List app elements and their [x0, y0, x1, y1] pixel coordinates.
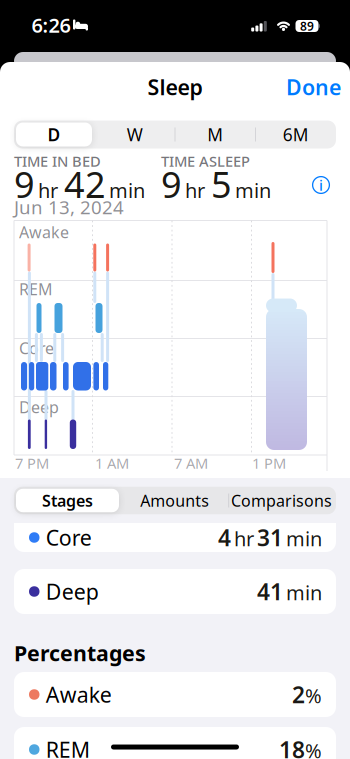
staticText: Percentages [14, 639, 146, 667]
staticText: Done [286, 73, 341, 101]
staticText: 6M [283, 123, 309, 146]
button[interactable]: About Sleep [311, 175, 330, 194]
staticText: TIME IN BED [14, 151, 101, 171]
staticText: 41 min [257, 576, 322, 606]
staticText: 18% [279, 734, 322, 759]
staticText: Awake [19, 221, 69, 243]
staticText: i [319, 175, 323, 195]
staticText: Awake [46, 680, 112, 709]
staticText: M [207, 123, 223, 146]
button[interactable]: Core [14, 523, 336, 552]
staticText: 4 hr 31 min [218, 522, 322, 552]
staticText: Amounts [140, 490, 209, 511]
staticText: Core [19, 337, 54, 359]
button[interactable]: M [180, 121, 250, 147]
staticText: TIME ASLEEP [161, 151, 250, 171]
staticText: Stages [42, 490, 93, 511]
staticText: 1 PM [252, 453, 286, 473]
staticText: Core [46, 523, 92, 552]
button[interactable]: D [16, 122, 92, 146]
staticText: Jun 13, 2024 [14, 195, 124, 219]
button[interactable]: Stages [16, 489, 119, 512]
staticText: D [47, 123, 60, 146]
staticText: 2% [292, 679, 322, 709]
staticText: 7 PM [15, 453, 49, 473]
button[interactable]: Awake [14, 672, 336, 717]
button[interactable]: W [100, 121, 170, 147]
button[interactable]: Amounts [127, 487, 222, 513]
staticText: Deep [19, 396, 59, 418]
button[interactable]: Comparisons [226, 487, 336, 513]
staticText: 9 hr 5 min [161, 160, 271, 208]
staticText: 89 [300, 18, 314, 34]
staticText: 1 AM [95, 453, 129, 473]
button[interactable]: REM [14, 727, 336, 759]
staticText: REM [46, 735, 90, 759]
staticText: Deep [46, 577, 99, 606]
staticText: W [127, 123, 143, 146]
staticText: 9 hr 42 min [14, 160, 145, 208]
staticText: 6:26 [31, 12, 70, 38]
staticText: 7 AM [174, 453, 208, 473]
staticText: Sleep [147, 73, 202, 101]
button[interactable]: Done [286, 73, 341, 101]
staticText: REM [19, 278, 53, 300]
button[interactable]: Deep [14, 569, 336, 614]
button[interactable]: 6M [261, 121, 331, 147]
staticText: Comparisons [231, 490, 332, 511]
